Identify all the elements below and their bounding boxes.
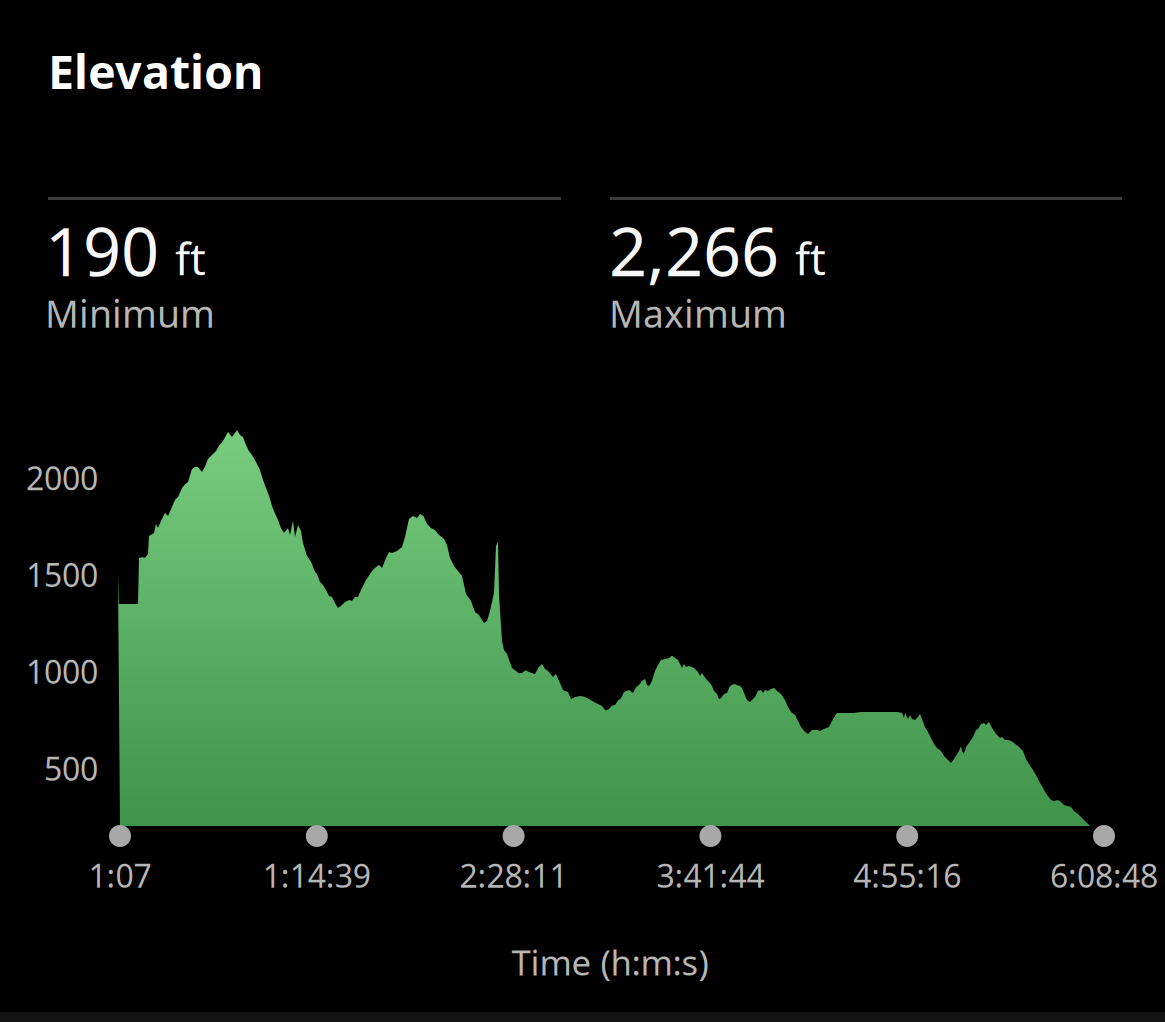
staticText: 6:08:48 (1050, 854, 1158, 896)
staticText: ft (175, 229, 206, 287)
staticText: 3:41:44 (656, 854, 764, 896)
staticText: 2,266 (609, 206, 779, 294)
staticText: 1000 (26, 650, 98, 693)
staticText: 2000 (26, 457, 98, 499)
staticText: 1:07 (88, 854, 151, 896)
staticText: ft (795, 229, 826, 287)
staticText: Maximum (609, 288, 787, 338)
staticText: 500 (44, 747, 98, 789)
staticText: 2:28:11 (460, 854, 568, 896)
staticText: Minimum (45, 288, 215, 338)
staticText: 1500 (26, 553, 98, 596)
button[interactable]: 2,266 (610, 197, 1122, 338)
staticText: 4:55:16 (853, 854, 961, 896)
staticText: Time (h:m:s) (511, 939, 708, 985)
staticText: Elevation (48, 40, 263, 102)
button[interactable]: 190 (48, 197, 561, 338)
staticText: 190 (45, 206, 159, 294)
staticText: 1:14:39 (263, 854, 371, 896)
button[interactable]: Elevation chart (0, 0, 1165, 1022)
